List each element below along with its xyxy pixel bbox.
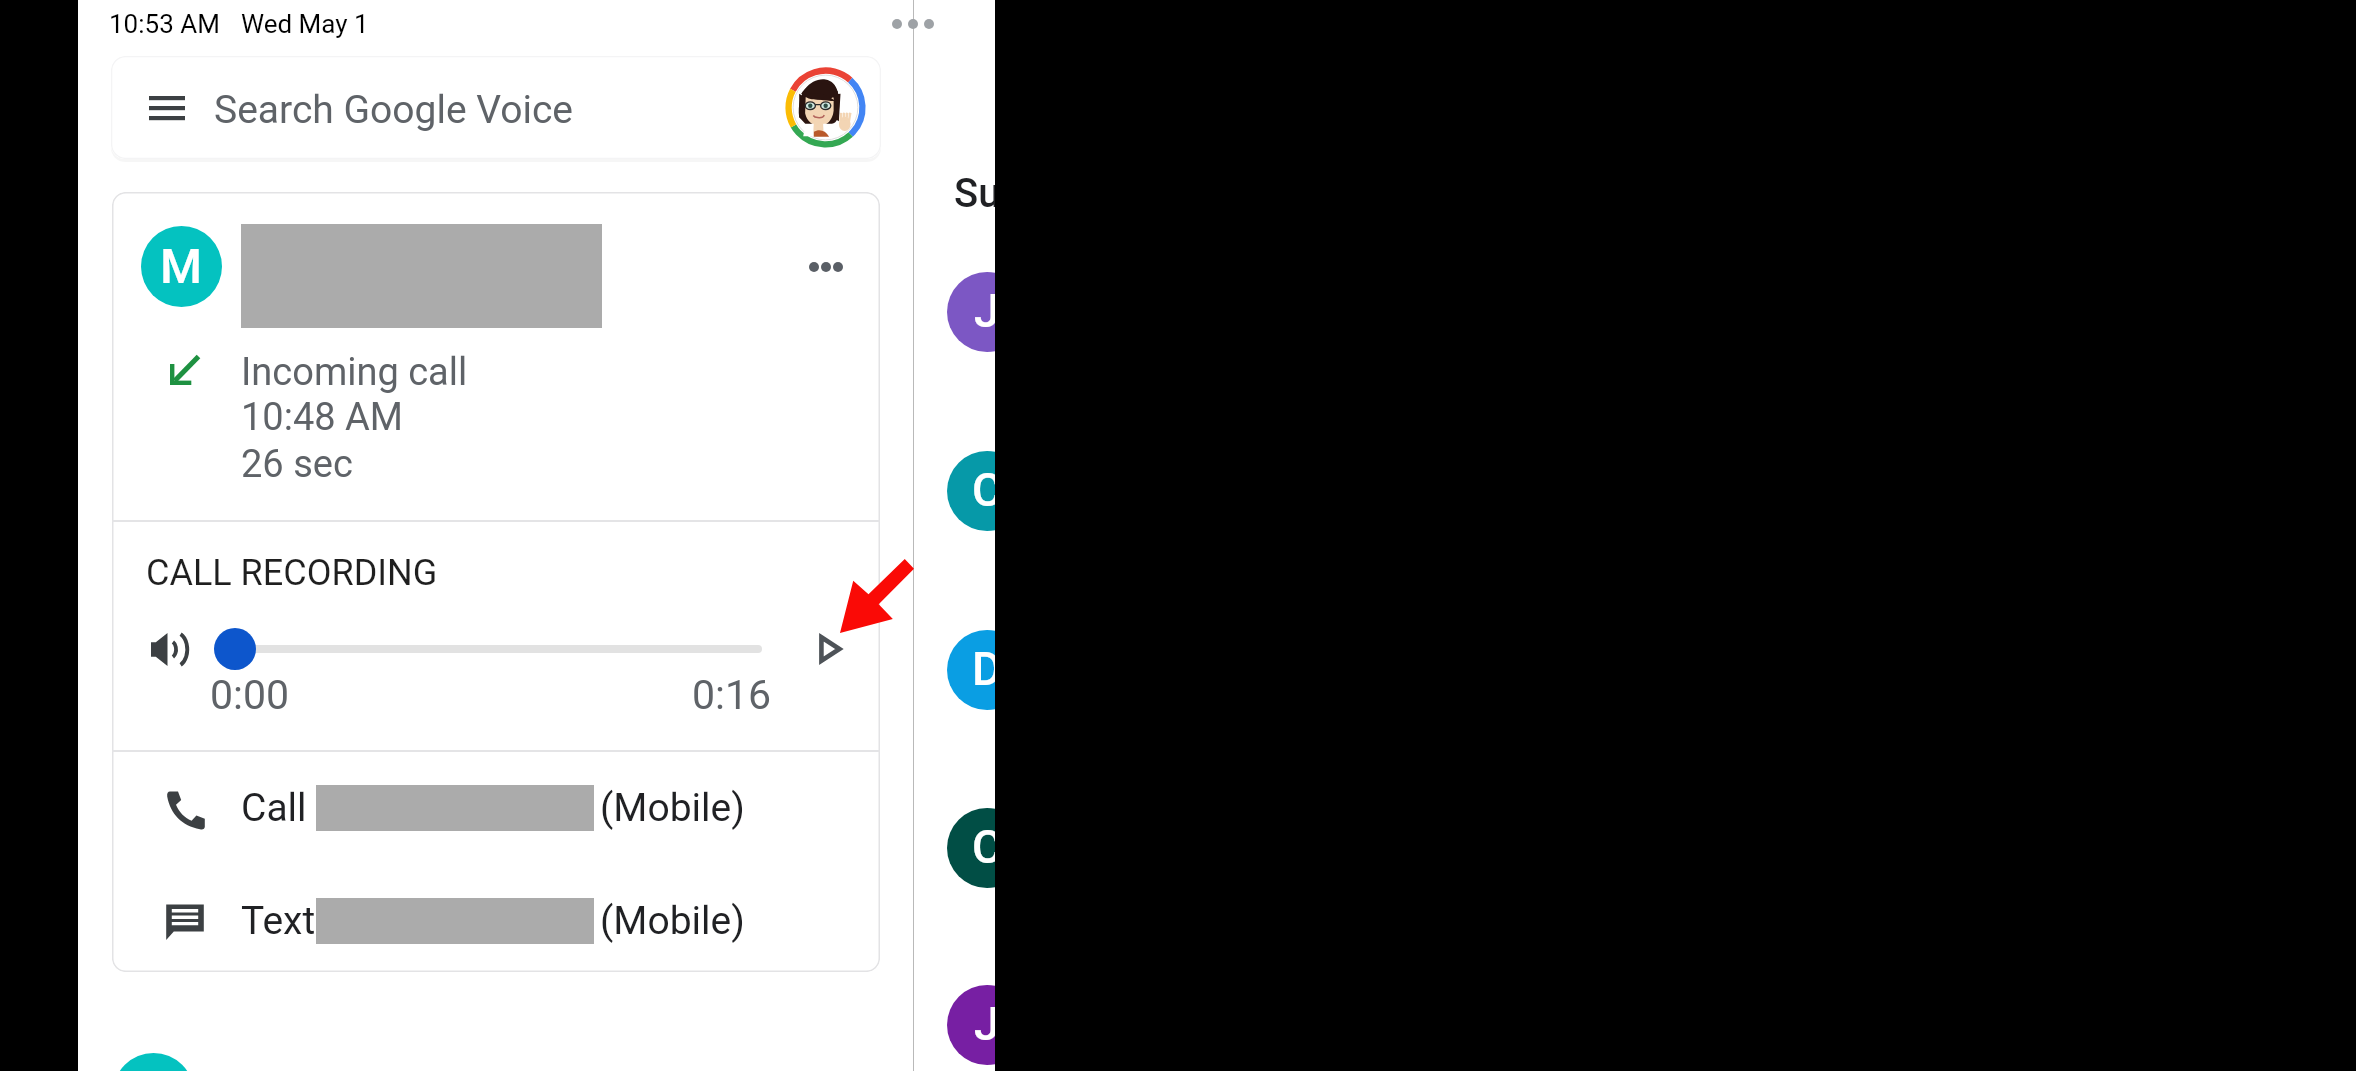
other: Volume	[151, 632, 184, 667]
button[interactable]: C	[947, 451, 995, 531]
other: Open navigation menu	[149, 96, 185, 120]
staticText: 0:00	[210, 671, 290, 719]
button[interactable]: More options	[774, 215, 878, 319]
other: Call	[166, 790, 206, 827]
staticText: J	[974, 997, 995, 1051]
button[interactable]: Open navigation menu	[111, 56, 881, 159]
staticText: J	[974, 284, 995, 338]
staticText: Incoming call	[241, 350, 468, 395]
button[interactable]: J	[947, 985, 995, 1065]
staticText: Wed May 1	[241, 9, 369, 39]
button[interactable]: Text message	[112, 865, 880, 972]
button[interactable]: Call	[112, 752, 880, 864]
staticText: Call	[241, 785, 307, 831]
staticText: D	[972, 642, 995, 696]
staticText: M	[160, 238, 203, 294]
button[interactable]: Account	[785, 67, 866, 148]
staticText: Su	[954, 170, 995, 217]
staticText: (Mobile)	[600, 898, 745, 944]
staticText: C	[972, 820, 995, 874]
staticText: (Mobile)	[600, 785, 745, 831]
button[interactable]: C	[947, 808, 995, 888]
staticText: 0:16	[692, 671, 772, 719]
staticText: 26 sec	[241, 442, 353, 487]
staticText: 10:48 AM	[241, 395, 404, 440]
button[interactable]: J	[947, 272, 995, 352]
other: Text message	[165, 902, 205, 940]
staticText: Text	[241, 898, 316, 944]
staticText: C	[972, 463, 995, 517]
button[interactable]: D	[947, 630, 995, 710]
staticText: Search Google Voice	[214, 87, 574, 133]
other: Play recording	[819, 635, 841, 663]
staticText: 10:53 AM	[109, 9, 220, 39]
staticText: CALL RECORDING	[146, 552, 438, 594]
